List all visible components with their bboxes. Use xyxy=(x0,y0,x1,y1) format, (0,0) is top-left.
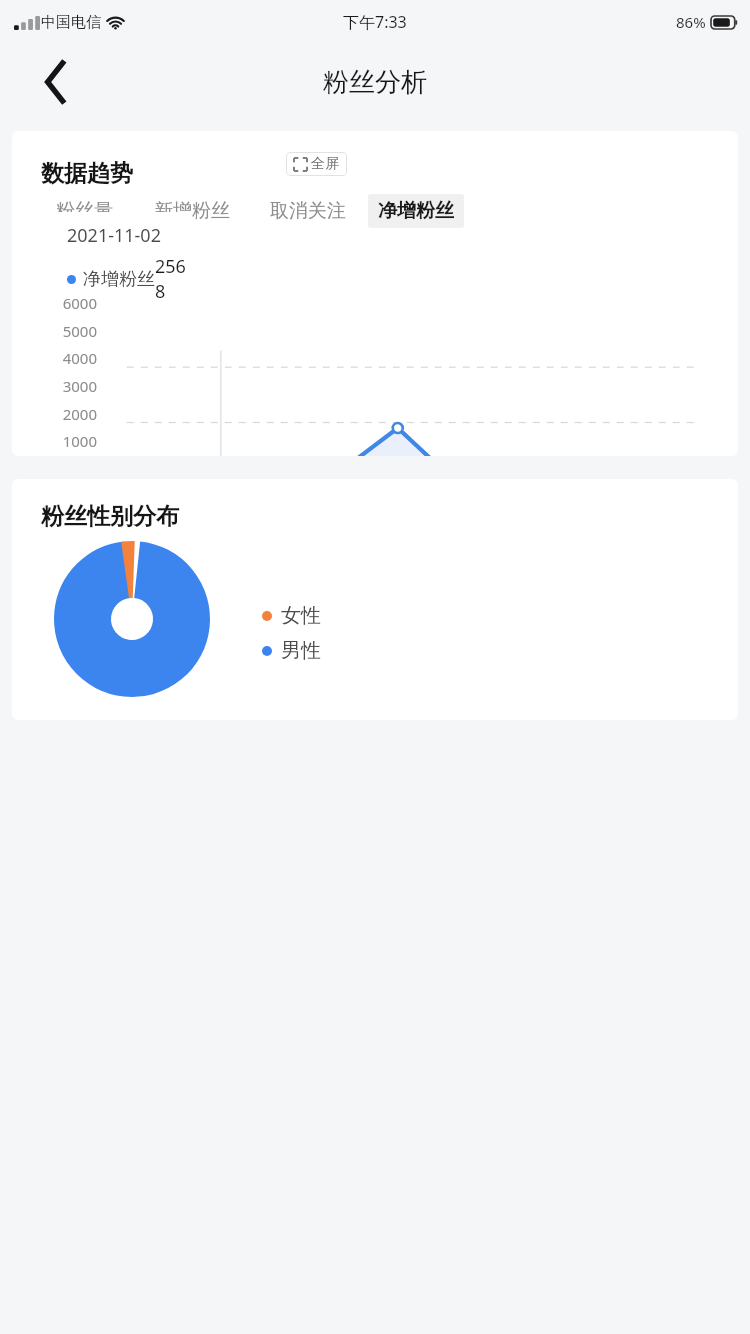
staticText: 女性 xyxy=(281,603,321,628)
staticText: 5000 xyxy=(52,321,97,341)
staticText: 中国电信 xyxy=(41,13,101,32)
staticText: 新增粉丝 xyxy=(154,199,230,223)
staticText: 粉丝量 xyxy=(56,199,113,223)
staticText: 粉丝分析 xyxy=(323,66,427,99)
staticText: 3000 xyxy=(52,376,97,396)
button[interactable]: 取消关注 xyxy=(260,194,356,228)
button[interactable]: 全屏 xyxy=(286,152,347,176)
staticText: 1000 xyxy=(52,431,97,451)
staticText: 净增粉丝 xyxy=(83,268,155,291)
staticText: 取消关注 xyxy=(270,199,346,223)
staticText: 下午7:33 xyxy=(343,11,407,33)
staticText: 86% xyxy=(676,12,706,32)
staticText: 数据趋势 xyxy=(41,159,133,188)
staticText: 4000 xyxy=(52,348,97,368)
staticText: 净增粉丝 xyxy=(378,199,454,223)
staticText: 男性 xyxy=(281,638,321,663)
staticText: 粉丝性别分布 xyxy=(41,502,179,531)
button[interactable]: 净增粉丝 xyxy=(368,194,464,228)
button[interactable]: 返回 xyxy=(22,48,90,116)
staticText: 2021-11-02 xyxy=(67,223,161,248)
button[interactable]: 新增粉丝 xyxy=(144,194,240,228)
button[interactable]: 粉丝量 xyxy=(46,194,123,228)
staticText: 6000 xyxy=(52,293,97,313)
staticText: 2000 xyxy=(52,404,97,424)
staticText: 2568 xyxy=(155,254,193,304)
staticText: 全屏 xyxy=(311,155,339,173)
